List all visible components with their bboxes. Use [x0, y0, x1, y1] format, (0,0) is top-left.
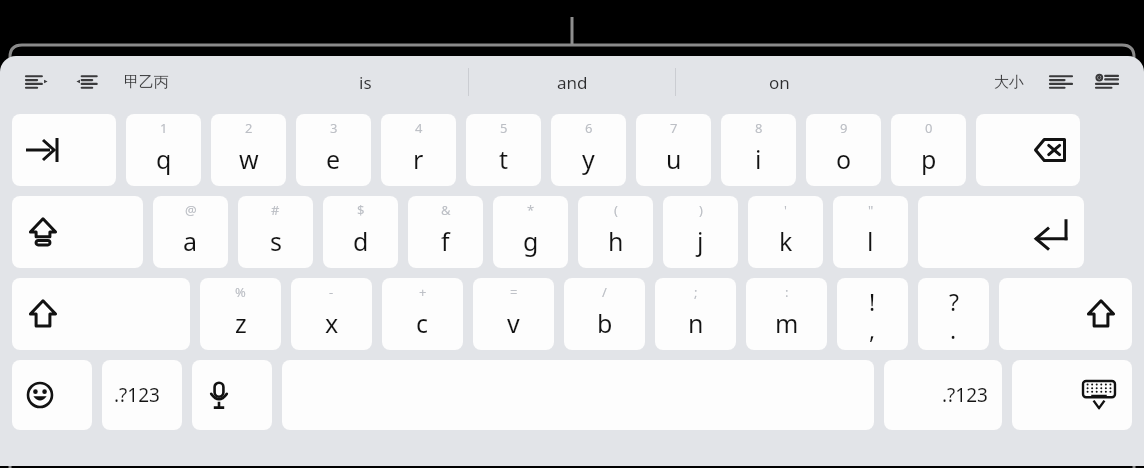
button[interactable]: + [382, 278, 463, 350]
staticText: $ [357, 201, 365, 219]
button[interactable]: ' [748, 196, 823, 268]
staticText: t [499, 142, 509, 176]
button[interactable]: ( [578, 196, 653, 268]
button[interactable]: on [676, 61, 882, 103]
button[interactable]: ) [663, 196, 738, 268]
button[interactable]: 甲乙丙 [124, 56, 169, 108]
staticText: ! [869, 286, 876, 317]
button[interactable]: 1 [126, 114, 201, 186]
staticText: .?123 [942, 382, 988, 408]
button[interactable]: : [746, 278, 827, 350]
button[interactable]: & [408, 196, 483, 268]
staticText: - [329, 283, 334, 301]
staticText: / [602, 283, 607, 301]
staticText: d [353, 224, 369, 258]
button[interactable]: Increase indent [66, 56, 108, 108]
button[interactable]: Tab [12, 114, 116, 186]
button[interactable]: 9 [806, 114, 881, 186]
staticText: ? [949, 286, 959, 317]
staticText: . [950, 314, 957, 345]
staticText: a [183, 224, 198, 258]
button[interactable]: ? . [918, 278, 989, 350]
button[interactable]: Dictate [192, 360, 272, 430]
button[interactable]: 5 [466, 114, 541, 186]
button[interactable]: Shift [12, 278, 190, 350]
button[interactable]: Decrease indent [16, 56, 58, 108]
button[interactable]: 4 [381, 114, 456, 186]
staticText: .?123 [114, 382, 160, 408]
staticText: 甲乙丙 [124, 73, 169, 92]
staticText: % [235, 283, 246, 301]
button[interactable]: 2 [211, 114, 286, 186]
button[interactable]: Shift [999, 278, 1132, 350]
staticText: p [921, 142, 937, 176]
staticText: c [416, 306, 429, 340]
staticText: q [156, 142, 172, 176]
button[interactable]: is [262, 61, 468, 103]
staticText: 7 [670, 119, 678, 137]
staticText: ) [699, 201, 703, 219]
button[interactable]: 7 [636, 114, 711, 186]
button[interactable]: 大小 [994, 56, 1024, 108]
staticText: i [755, 142, 762, 176]
staticText: g [523, 224, 539, 258]
button[interactable]: = [473, 278, 554, 350]
staticText: 5 [500, 119, 508, 137]
staticText: 8 [755, 119, 763, 137]
staticText: k [779, 224, 793, 258]
staticText: y [582, 142, 595, 176]
staticText: # [271, 201, 280, 219]
button[interactable]: Hide keyboard [1012, 360, 1132, 430]
staticText: m [775, 306, 799, 340]
button[interactable]: Delete [976, 114, 1080, 186]
staticText: + [419, 283, 427, 301]
button[interactable]: - [291, 278, 372, 350]
button[interactable]: .?123 [102, 360, 182, 430]
button[interactable]: $ [323, 196, 398, 268]
button[interactable]: " [833, 196, 908, 268]
staticText: 大小 [994, 73, 1024, 92]
button[interactable]: .?123 [884, 360, 1002, 430]
staticText: and [557, 71, 588, 94]
staticText: v [507, 306, 520, 340]
button[interactable]: Return [918, 196, 1084, 268]
button[interactable]: Text alignment [1040, 56, 1082, 108]
staticText: e [326, 142, 341, 176]
staticText: z [235, 306, 247, 340]
staticText: ( [614, 201, 618, 219]
staticText: 9 [840, 119, 848, 137]
button[interactable]: % [200, 278, 281, 350]
staticText: s [270, 224, 282, 258]
staticText: * [527, 201, 535, 219]
staticText: ; [694, 283, 698, 301]
staticText: is [359, 71, 372, 94]
button[interactable]: Emoji [12, 360, 92, 430]
button[interactable]: and [469, 61, 675, 103]
staticText: f [441, 224, 450, 258]
button[interactable]: ; [655, 278, 736, 350]
staticText: 4 [415, 119, 423, 137]
button[interactable]: / [564, 278, 645, 350]
button[interactable]: @ [153, 196, 228, 268]
button[interactable]: ! , [837, 278, 908, 350]
staticText: w [239, 142, 259, 176]
staticText: on [769, 71, 790, 94]
button[interactable]: Insert list [1086, 56, 1128, 108]
staticText: x [325, 306, 339, 340]
button[interactable]: # [238, 196, 313, 268]
button[interactable]: 0 [891, 114, 966, 186]
staticText: 2 [245, 119, 253, 137]
staticText: " [868, 201, 874, 219]
button[interactable]: 8 [721, 114, 796, 186]
staticText: 0 [925, 119, 933, 137]
button[interactable]: 6 [551, 114, 626, 186]
staticText: 6 [585, 119, 593, 137]
staticText: l [867, 224, 874, 258]
button[interactable]: 3 [296, 114, 371, 186]
button[interactable]: Caps lock [12, 196, 143, 268]
staticText: o [836, 142, 852, 176]
staticText: & [441, 201, 451, 219]
button[interactable]: * [493, 196, 568, 268]
staticText: u [666, 142, 682, 176]
